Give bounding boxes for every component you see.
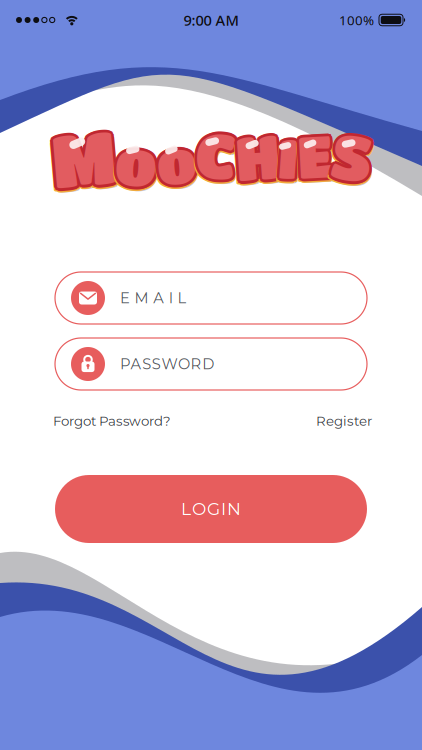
staticText: E — [295, 124, 330, 190]
staticText: H — [233, 119, 277, 189]
staticText: o — [158, 130, 198, 196]
staticText: M — [51, 115, 116, 199]
staticText: E — [301, 125, 336, 191]
staticText: E — [297, 126, 332, 193]
staticText: Forgot Password? — [53, 413, 171, 429]
staticText: o — [117, 129, 159, 199]
staticText: o — [119, 130, 161, 200]
staticText: C — [193, 116, 234, 187]
staticText: o — [156, 125, 196, 191]
staticText: o — [156, 131, 196, 197]
staticText: o — [115, 132, 157, 201]
staticText: I — [276, 125, 296, 189]
staticText: H — [232, 124, 276, 194]
staticText: o — [113, 127, 155, 197]
staticText: LOGIN — [181, 499, 241, 519]
staticText: E — [295, 120, 330, 186]
staticText: I — [280, 130, 300, 193]
staticText: o — [153, 131, 193, 197]
staticText: I — [282, 128, 302, 192]
staticText: o — [154, 126, 194, 192]
staticText: C — [199, 122, 240, 193]
staticText: C — [193, 118, 234, 189]
staticText: C — [197, 120, 238, 191]
staticText: H — [233, 121, 277, 191]
staticText: C — [193, 120, 234, 191]
staticText: o — [113, 129, 155, 199]
staticText: I — [278, 125, 298, 189]
staticText: H — [237, 123, 281, 193]
staticText: S — [329, 118, 370, 189]
staticText: H — [237, 126, 281, 195]
staticText: o — [115, 124, 157, 194]
staticText: E — [295, 122, 330, 188]
staticText: M — [49, 117, 114, 201]
staticText: C — [197, 123, 238, 194]
staticText: o — [160, 131, 200, 197]
button[interactable]: Forgot Password? — [53, 413, 171, 429]
staticText: M — [48, 118, 113, 202]
staticText: I — [278, 128, 298, 191]
staticText: o — [115, 127, 157, 197]
staticText: E — [297, 125, 332, 191]
staticText: o — [113, 125, 155, 195]
staticText: H — [235, 124, 279, 194]
staticText: I — [280, 127, 300, 191]
staticText: I — [281, 125, 301, 189]
staticText: S — [335, 124, 376, 195]
staticText: o — [159, 128, 199, 194]
staticText: I — [278, 122, 298, 186]
button[interactable]: PASSWORD — [55, 338, 367, 390]
staticText: S — [331, 125, 372, 196]
staticText: M — [49, 115, 114, 199]
staticText: M — [51, 118, 116, 202]
staticText: o — [115, 130, 157, 200]
staticText: C — [195, 121, 236, 192]
button[interactable]: LOGIN — [55, 475, 367, 543]
staticText: H — [235, 118, 279, 188]
staticText: o — [158, 132, 198, 199]
staticText: EMAIL — [120, 289, 186, 307]
staticText: I — [278, 130, 298, 193]
staticText: M — [49, 113, 114, 197]
staticText: S — [333, 122, 374, 193]
staticText: o — [154, 128, 194, 194]
staticText: o — [118, 127, 160, 197]
staticText: o — [117, 125, 159, 195]
staticText: S — [331, 120, 372, 191]
button[interactable]: EMAIL — [55, 272, 367, 324]
staticText: o — [112, 130, 154, 200]
staticText: Register — [316, 413, 372, 429]
staticText: S — [328, 124, 369, 195]
staticText: I — [275, 128, 295, 192]
staticText: 100% — [339, 11, 374, 29]
staticText: M — [53, 113, 118, 197]
staticText: M — [54, 115, 119, 199]
staticText: C — [195, 123, 236, 194]
staticText: S — [334, 120, 375, 191]
staticText: E — [297, 122, 332, 188]
staticText: H — [239, 124, 283, 194]
staticText: o — [158, 126, 198, 192]
staticText: H — [237, 119, 281, 189]
staticText: S — [333, 118, 374, 189]
staticText: E — [294, 125, 329, 191]
staticText: H — [235, 126, 279, 195]
staticText: E — [297, 119, 332, 185]
staticText: M — [53, 119, 118, 203]
staticText: E — [299, 124, 334, 190]
staticText: M — [51, 112, 116, 196]
staticText: H — [235, 121, 279, 191]
staticText: o — [154, 130, 194, 196]
staticText: M — [51, 119, 116, 203]
button[interactable]: Register — [316, 413, 372, 429]
staticText: H — [233, 123, 277, 193]
staticText: o — [156, 128, 196, 194]
staticText: C — [195, 118, 236, 189]
staticText: S — [329, 120, 370, 191]
staticText: M — [55, 118, 120, 202]
staticText: C — [197, 116, 238, 187]
staticText: PASSWORD — [120, 355, 214, 373]
staticText: o — [117, 132, 159, 201]
staticText: E — [300, 122, 335, 188]
